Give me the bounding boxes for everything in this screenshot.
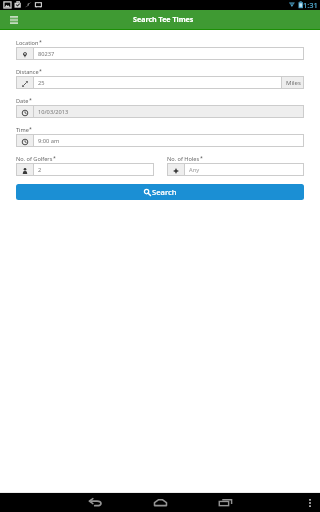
staticText: 80237 <box>38 50 55 58</box>
staticText: No. of Holes <box>167 155 200 163</box>
button[interactable]: Search <box>16 184 304 200</box>
staticText: Search <box>152 187 177 197</box>
staticText: Miles <box>286 79 301 87</box>
staticText: No. of Golfers <box>16 155 53 163</box>
staticText: Any <box>189 166 200 174</box>
staticText: Time <box>16 126 29 134</box>
button[interactable]: Recent apps <box>216 493 234 512</box>
button[interactable]: Home <box>151 493 169 512</box>
button[interactable]: More options <box>303 496 317 510</box>
button[interactable]: 80237 <box>16 47 304 60</box>
staticText: 2 <box>38 166 42 174</box>
staticText: 1:31 <box>303 0 318 10</box>
staticText: Search Tee Times <box>133 14 194 24</box>
staticText: 10/03/2013 <box>38 108 69 116</box>
staticText: Distance <box>16 68 39 76</box>
staticText: * <box>39 67 42 74</box>
button[interactable]: 9:00 am <box>16 134 304 147</box>
staticText: 25 <box>38 79 45 87</box>
staticText: Date <box>16 97 29 105</box>
staticText: 9:00 am <box>38 137 60 145</box>
button[interactable]: Navigation menu <box>5 11 23 29</box>
button[interactable]: Any <box>167 163 304 176</box>
staticText: * <box>53 154 56 161</box>
button[interactable]: Back <box>86 493 104 512</box>
staticText: * <box>39 38 42 45</box>
button[interactable]: 25 <box>16 76 304 89</box>
staticText: * <box>29 125 32 132</box>
button[interactable]: 10/03/2013 <box>16 105 304 118</box>
button[interactable]: 2 <box>16 163 154 176</box>
staticText: Location <box>16 39 39 47</box>
staticText: * <box>29 96 32 103</box>
staticText: * <box>200 154 203 161</box>
